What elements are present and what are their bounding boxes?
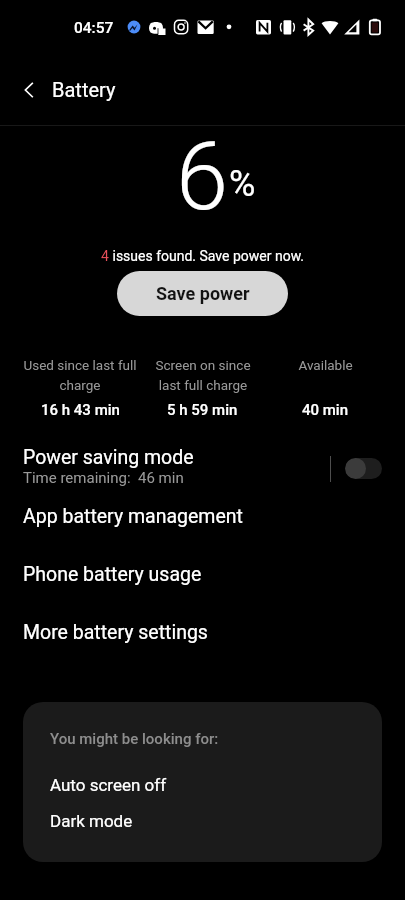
staticText: Screen on since last full charge [155, 357, 251, 393]
staticText: App battery management [23, 505, 243, 528]
staticText: 16 h 43 min [41, 401, 120, 419]
staticText: Battery [52, 78, 116, 101]
staticText: issues found. Save power now. [109, 248, 305, 264]
staticText: Auto screen off [50, 775, 167, 795]
button[interactable]: Save power [117, 271, 288, 316]
staticText: 5 h 59 min [167, 401, 238, 419]
staticText: Power saving mode [23, 446, 194, 469]
staticText: 04:57 [74, 19, 114, 37]
button[interactable]: Back [9, 70, 49, 110]
staticText: 6 [176, 122, 229, 210]
button[interactable]: Power saving mode toggle [345, 458, 382, 479]
staticText: You might be looking for: [50, 730, 219, 748]
button[interactable]: App battery management [0, 487, 405, 545]
staticText: Phone battery usage [23, 563, 202, 586]
staticText: More battery settings [23, 621, 208, 644]
staticText: 40 min [302, 401, 349, 419]
staticText: Time remaining: 46 min [23, 469, 184, 487]
staticText: 4 [101, 248, 109, 264]
button[interactable]: Auto screen off [23, 775, 382, 795]
staticText: Dark mode [50, 811, 133, 831]
button[interactable]: More battery settings [0, 603, 405, 661]
button[interactable]: Power saving mode [0, 446, 405, 487]
staticText: Available [298, 357, 353, 373]
button[interactable]: Phone battery usage [0, 545, 405, 603]
button[interactable]: Dark mode [23, 811, 382, 831]
staticText: % [229, 163, 256, 205]
staticText: Used since last full charge [23, 357, 137, 393]
staticText: Save power [156, 283, 250, 304]
